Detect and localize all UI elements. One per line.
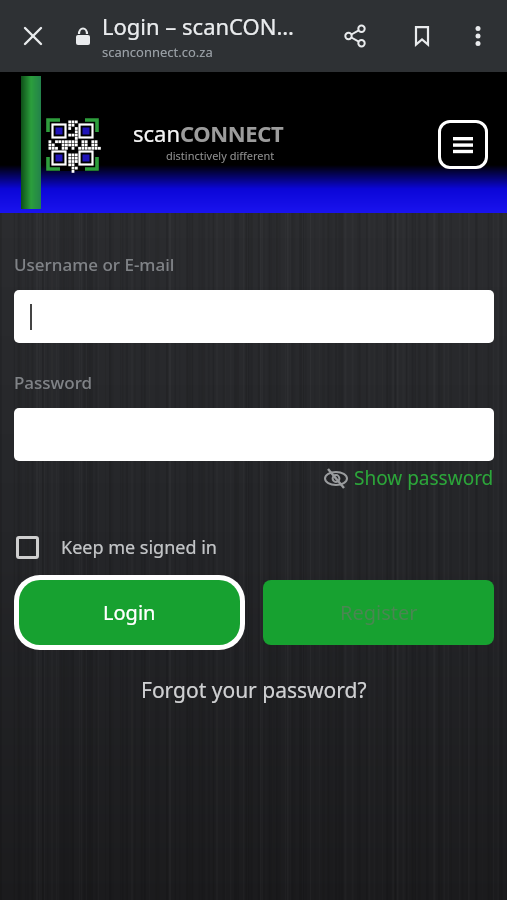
staticText: Login (103, 599, 156, 626)
button[interactable] (409, 23, 435, 49)
staticText: Login – scanCON… (102, 11, 294, 41)
button[interactable]: Forgot your password? (141, 676, 367, 705)
button[interactable]: Login – scanCON… (102, 11, 294, 61)
staticText: Keep me signed in (61, 535, 217, 560)
button[interactable] (438, 120, 488, 169)
button[interactable]: Register (263, 580, 494, 645)
button[interactable] (20, 23, 46, 49)
button[interactable] (342, 23, 368, 49)
button[interactable] (14, 408, 494, 461)
staticText: Password (14, 371, 93, 394)
staticText: Show password (354, 465, 494, 491)
button[interactable]: Show password (14, 465, 494, 491)
button[interactable]: Login (19, 580, 240, 645)
staticText: distinctively different (166, 148, 275, 163)
button[interactable] (14, 290, 494, 343)
staticText: Username or E-mail (14, 253, 175, 276)
button[interactable] (465, 23, 491, 49)
staticText: scanconnect.co.za (102, 43, 213, 61)
staticText: Register (340, 599, 418, 626)
staticText: scanCONNECT (133, 118, 284, 148)
button[interactable]: Keep me signed in (14, 535, 217, 560)
